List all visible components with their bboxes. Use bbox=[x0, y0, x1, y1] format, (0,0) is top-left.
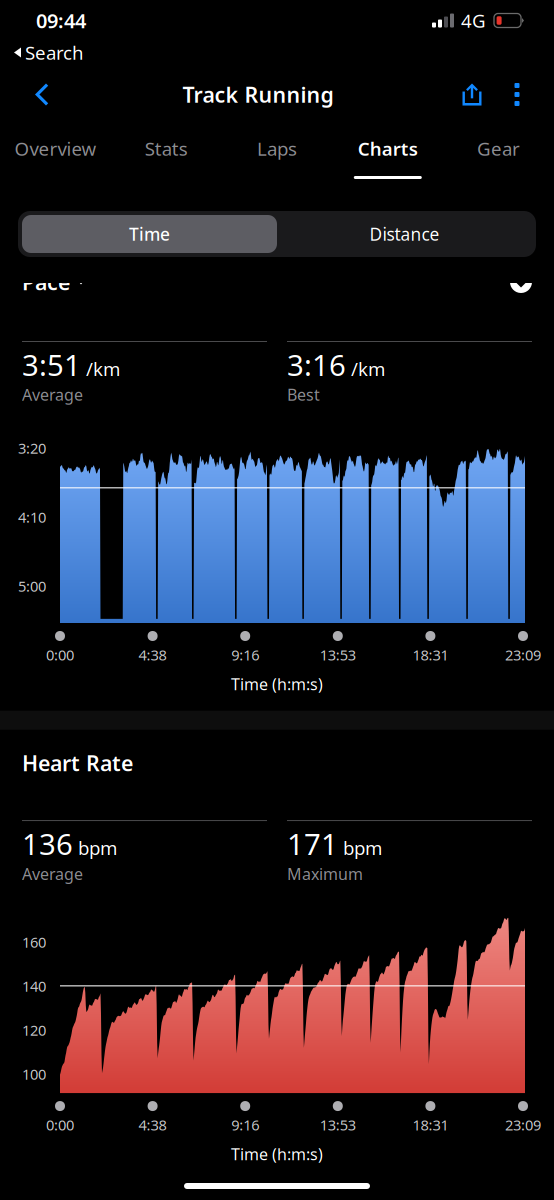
staticText: 4:38 bbox=[139, 645, 167, 664]
staticText: Distance bbox=[369, 222, 439, 245]
staticText: 13:53 bbox=[320, 1115, 356, 1135]
staticText: 18:31 bbox=[412, 645, 448, 664]
staticText: 3:20 bbox=[18, 438, 46, 458]
button[interactable]: Share bbox=[446, 64, 498, 125]
staticText: Maximum bbox=[287, 863, 363, 884]
staticText: Heart Rate bbox=[22, 749, 133, 777]
staticText: 0:00 bbox=[46, 645, 74, 664]
button[interactable]: Overview bbox=[0, 125, 111, 187]
button[interactable]: More options bbox=[498, 64, 536, 125]
staticText: Average bbox=[22, 863, 83, 884]
staticText: Laps bbox=[257, 136, 297, 161]
staticText: 4:10 bbox=[18, 507, 46, 527]
staticText: 4G bbox=[461, 8, 486, 33]
staticText: Stats bbox=[145, 136, 188, 161]
staticText: Overview bbox=[14, 136, 96, 161]
staticText: 23:09 bbox=[505, 645, 541, 664]
staticText: 09:44 bbox=[36, 7, 86, 34]
staticText: Pace bbox=[22, 268, 70, 296]
staticText: 160 bbox=[22, 932, 46, 952]
staticText: Time bbox=[129, 222, 170, 245]
button[interactable]: Back bbox=[14, 64, 70, 125]
staticText: 9:16 bbox=[231, 1115, 259, 1135]
staticText: 3:16 bbox=[287, 345, 346, 384]
staticText: 171 bbox=[287, 824, 338, 863]
staticText: 9:16 bbox=[231, 645, 259, 664]
button[interactable]: Laps bbox=[222, 125, 332, 187]
staticText: 100 bbox=[22, 1064, 46, 1084]
staticText: 5:00 bbox=[18, 576, 46, 596]
staticText: 0:00 bbox=[46, 1115, 74, 1135]
staticText: bpm bbox=[343, 835, 382, 860]
staticText: bpm bbox=[78, 835, 117, 860]
staticText: 120 bbox=[22, 1020, 46, 1040]
staticText: Search bbox=[25, 40, 84, 65]
staticText: /km bbox=[351, 356, 385, 381]
staticText: Time (h:m:s) bbox=[231, 1143, 323, 1165]
staticText: Track Running bbox=[182, 80, 333, 109]
staticText: /km bbox=[86, 356, 120, 381]
staticText: Charts bbox=[358, 136, 418, 161]
button[interactable]: Charts bbox=[332, 125, 443, 187]
staticText: 23:09 bbox=[505, 1115, 541, 1135]
staticText: 3:51 bbox=[22, 345, 81, 384]
button[interactable]: Stats bbox=[111, 125, 222, 187]
staticText: Best bbox=[287, 384, 320, 405]
staticText: 136 bbox=[22, 824, 73, 863]
staticText: Average bbox=[22, 384, 83, 405]
staticText: 13:53 bbox=[320, 645, 356, 664]
button[interactable]: Distance bbox=[277, 215, 532, 253]
button[interactable]: Pace bbox=[0, 283, 554, 294]
staticText: Time (h:m:s) bbox=[231, 673, 323, 695]
button[interactable]: Gear bbox=[443, 125, 554, 187]
button[interactable]: Time bbox=[22, 215, 277, 253]
staticText: 4:38 bbox=[139, 1115, 167, 1135]
staticText: 140 bbox=[22, 976, 46, 996]
staticText: 18:31 bbox=[412, 1115, 448, 1135]
staticText: Gear bbox=[477, 136, 520, 161]
